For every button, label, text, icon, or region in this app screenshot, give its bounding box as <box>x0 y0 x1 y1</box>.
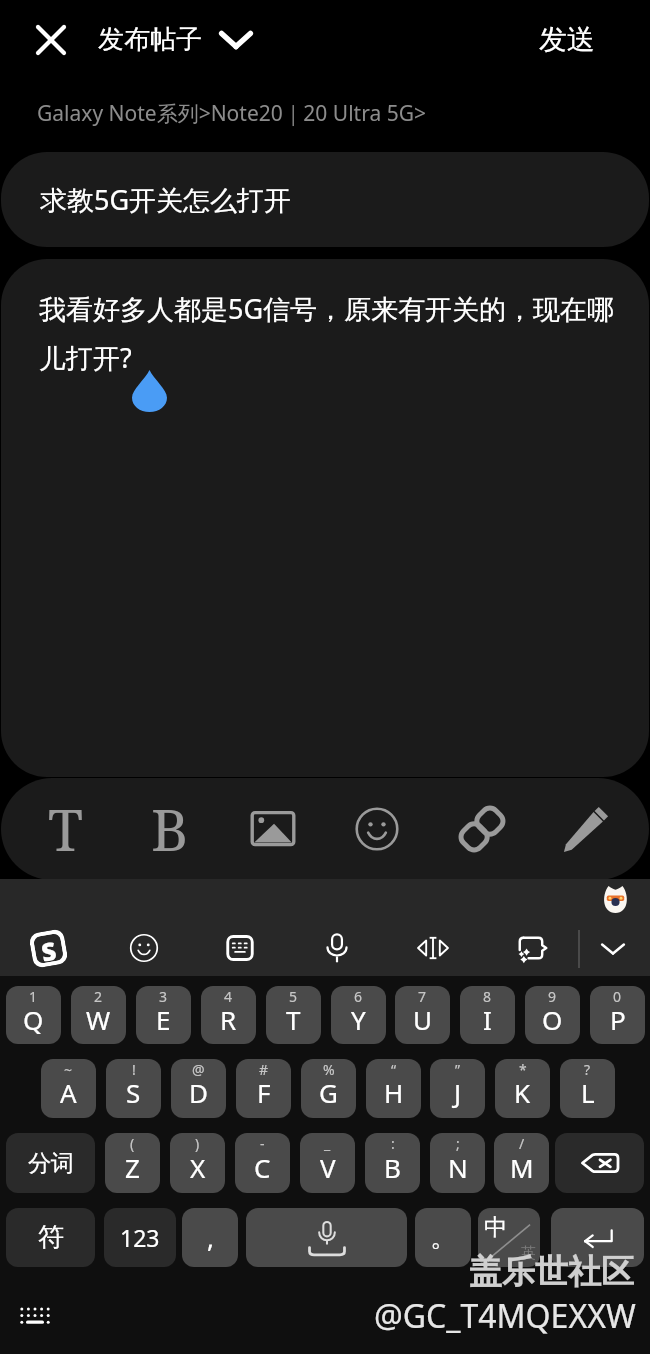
button[interactable]: , <box>182 1208 238 1267</box>
button[interactable]: _ <box>300 1133 355 1193</box>
button[interactable]: Backspace <box>555 1133 644 1193</box>
button[interactable]: Move cursor <box>403 918 463 978</box>
staticText: 9 <box>548 987 557 1006</box>
staticText: B <box>151 790 189 868</box>
button[interactable]: Space <box>246 1208 407 1267</box>
staticText: 发送 <box>539 22 595 57</box>
button[interactable]: 9 <box>525 986 580 1044</box>
button[interactable]: Clipboard <box>502 918 562 978</box>
staticText: Y <box>351 1002 366 1037</box>
button[interactable]: Bold <box>136 778 204 880</box>
button[interactable]: 3 <box>136 986 191 1044</box>
staticText: : <box>391 1134 395 1153</box>
button[interactable]: 4 <box>201 986 256 1044</box>
button[interactable]: Emoji <box>343 778 411 880</box>
button[interactable]: ? <box>560 1059 615 1118</box>
button[interactable]: 分词 <box>6 1133 95 1193</box>
staticText: I <box>483 1002 492 1037</box>
button[interactable]: / <box>494 1133 549 1193</box>
staticText: G <box>319 1075 338 1110</box>
button[interactable]: 0 <box>590 986 645 1044</box>
button[interactable]: 求教5G开关怎么打开 <box>1 152 649 247</box>
button[interactable]: ! <box>106 1059 161 1118</box>
staticText: W <box>86 1002 111 1037</box>
button[interactable]: Text format <box>31 778 99 880</box>
button[interactable]: Voice input <box>307 918 367 978</box>
button[interactable]: Switch language <box>478 1208 540 1267</box>
button[interactable]: Close <box>22 11 79 68</box>
button[interactable]: 。 <box>415 1208 471 1267</box>
button[interactable]: @ <box>171 1059 226 1118</box>
staticText: M <box>510 1150 534 1185</box>
staticText: O <box>542 1002 563 1037</box>
staticText: X <box>190 1150 206 1185</box>
button[interactable]: ; <box>430 1133 485 1193</box>
button[interactable]: 5 <box>266 986 321 1044</box>
button[interactable]: Input method <box>18 918 78 978</box>
staticText: U <box>413 1002 433 1037</box>
button[interactable]: Keyboard layout <box>210 918 270 978</box>
button[interactable]: Insert link <box>448 778 516 880</box>
staticText: _ <box>324 1134 331 1153</box>
staticText: ? <box>584 1060 591 1079</box>
staticText: S <box>126 1075 141 1110</box>
button[interactable]: Hide keyboard <box>583 918 643 978</box>
button[interactable]: Draw <box>552 778 620 880</box>
staticText: D <box>189 1075 208 1110</box>
button[interactable]: 我看好多人都是5G信号，原来有开关的，现在哪儿打开? <box>1 259 649 777</box>
button[interactable]: 8 <box>460 986 515 1044</box>
staticText: K <box>514 1075 531 1110</box>
staticText: ! <box>132 1060 136 1079</box>
staticText: 英 <box>521 1244 536 1263</box>
staticText: 我看好多人都是5G信号，原来有开关的，现在哪儿打开? <box>39 290 637 376</box>
button[interactable]: 2 <box>71 986 126 1044</box>
button[interactable]: ~ <box>41 1059 96 1118</box>
staticText: 5 <box>289 987 298 1006</box>
button[interactable]: - <box>235 1133 290 1193</box>
staticText: V <box>320 1150 336 1185</box>
button[interactable]: ( <box>105 1133 160 1193</box>
button[interactable]: 6 <box>331 986 386 1044</box>
staticText: H <box>384 1075 404 1110</box>
button[interactable]: * <box>495 1059 550 1118</box>
staticText: * <box>519 1060 527 1079</box>
button[interactable]: 1 <box>6 986 61 1044</box>
staticText: 1 <box>29 987 38 1006</box>
staticText: 7 <box>418 987 427 1006</box>
staticText: ) <box>195 1134 200 1153</box>
button[interactable]: % <box>301 1059 356 1118</box>
staticText: % <box>323 1060 335 1079</box>
staticText: 发布帖子 <box>98 23 202 56</box>
staticText: C <box>254 1150 271 1185</box>
staticText: 分词 <box>28 1149 74 1178</box>
staticText: 6 <box>354 987 363 1006</box>
staticText: 4 <box>224 987 233 1006</box>
staticText: R <box>220 1002 237 1037</box>
button[interactable]: ” <box>430 1059 485 1118</box>
staticText: Galaxy Note系列>Note20｜20 Ultra 5G> <box>37 99 426 128</box>
button[interactable]: Insert image <box>239 778 307 880</box>
button[interactable]: ) <box>170 1133 225 1193</box>
button[interactable]: “ <box>366 1059 421 1118</box>
button[interactable]: Enter <box>551 1208 644 1267</box>
button[interactable]: Emoji <box>114 918 174 978</box>
staticText: 求教5G开关怎么打开 <box>40 181 292 218</box>
staticText: @GC_T4MQEXXW <box>374 1294 636 1334</box>
button[interactable]: # <box>236 1059 291 1118</box>
button[interactable]: 发布帖子 <box>98 11 251 68</box>
staticText: J <box>454 1075 462 1110</box>
button[interactable]: 发送 <box>519 11 615 68</box>
button[interactable]: 7 <box>395 986 450 1044</box>
button[interactable]: 123 <box>104 1208 176 1267</box>
staticText: 8 <box>483 987 492 1006</box>
staticText: 3 <box>159 987 168 1006</box>
staticText: T <box>48 790 83 868</box>
staticText: L <box>581 1075 595 1110</box>
button[interactable]: : <box>365 1133 420 1193</box>
button[interactable]: Account <box>601 884 630 914</box>
staticText: F <box>257 1075 271 1110</box>
staticText: ; <box>456 1134 460 1153</box>
button[interactable]: Keyboard settings <box>12 1296 58 1336</box>
staticText: E <box>156 1002 171 1037</box>
button[interactable]: 符 <box>6 1208 95 1267</box>
